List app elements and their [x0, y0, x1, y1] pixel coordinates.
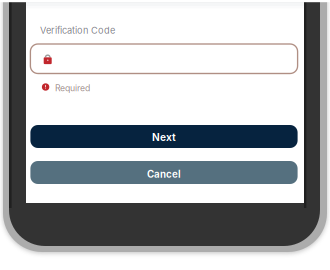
staticText: Cancel	[147, 168, 181, 180]
staticText: Required	[55, 83, 90, 93]
button[interactable]: Cancel	[30, 161, 298, 184]
staticText: Next	[152, 131, 176, 144]
staticText: Verification Code	[40, 25, 115, 36]
button[interactable]: Next	[30, 125, 298, 148]
